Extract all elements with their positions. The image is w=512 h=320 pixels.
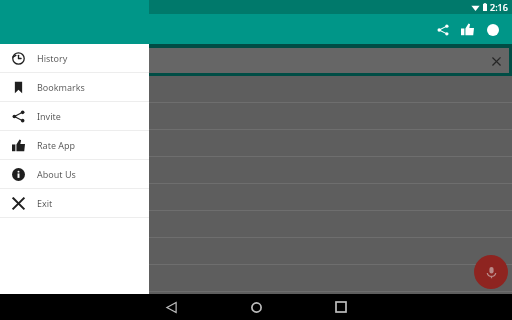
staticText: Bookmarks <box>37 81 85 93</box>
button[interactable]: Bookmarks <box>0 73 149 102</box>
button[interactable]: Share <box>430 17 455 42</box>
staticText: Invite <box>37 110 61 122</box>
staticText: Exit <box>37 197 53 209</box>
button[interactable]: Voice search <box>474 255 508 289</box>
button[interactable]: Home <box>243 294 269 320</box>
staticText: 2:16 <box>490 1 508 13</box>
button[interactable]: Exit <box>0 189 149 218</box>
button[interactable]: About Us <box>480 17 505 42</box>
button[interactable]: Back <box>158 294 184 320</box>
button[interactable]: History <box>0 44 149 73</box>
staticText: About Us <box>37 168 76 180</box>
button[interactable]: About Us <box>0 160 149 189</box>
button[interactable]: Clear search <box>487 52 505 70</box>
button[interactable]: Rate App <box>455 17 480 42</box>
staticText: History <box>37 52 68 64</box>
button[interactable]: Recents <box>328 294 354 320</box>
button[interactable]: Clear search <box>3 48 509 73</box>
button[interactable]: Rate App <box>0 131 149 160</box>
button[interactable]: Invite <box>0 102 149 131</box>
staticText: Rate App <box>37 139 76 151</box>
